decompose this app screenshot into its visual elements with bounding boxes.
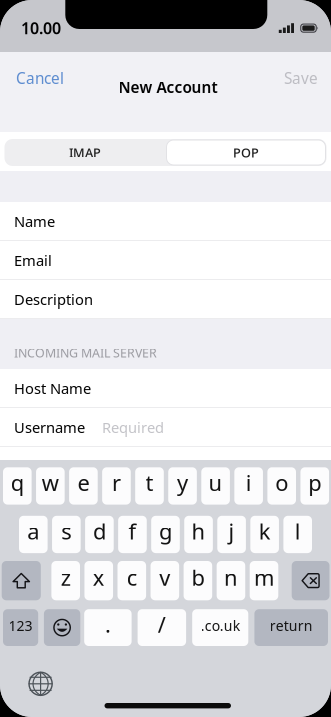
button[interactable]: m [250, 561, 278, 600]
staticText: z [61, 563, 71, 592]
staticText: f [128, 516, 136, 545]
staticText: l [295, 516, 301, 545]
button[interactable]: y [168, 467, 197, 505]
button[interactable]: u [201, 467, 230, 505]
button[interactable]: Emoji [44, 609, 80, 646]
staticText: c [127, 563, 137, 592]
button[interactable]: / [138, 609, 186, 646]
staticText: Cancel [16, 68, 64, 88]
staticText: x [93, 563, 105, 592]
button[interactable]: j [217, 516, 246, 553]
button[interactable]: Next keyboard [26, 669, 56, 699]
staticText: POP [233, 144, 259, 161]
button[interactable]: d [85, 516, 114, 553]
staticText: w [42, 468, 59, 497]
button[interactable]: IMAP [4, 139, 165, 166]
button[interactable]: l [283, 516, 312, 553]
staticText: . [105, 610, 111, 639]
button[interactable]: t [135, 467, 164, 505]
button[interactable]: o [267, 467, 296, 505]
button[interactable]: q [3, 467, 32, 505]
button[interactable]: i [234, 467, 263, 505]
staticText: .co.uk [201, 616, 240, 635]
button[interactable]: .co.uk [192, 609, 248, 646]
button[interactable]: h [184, 516, 213, 553]
staticText: return [270, 616, 313, 635]
staticText: Required [102, 417, 164, 437]
staticText: g [159, 516, 172, 545]
staticText: r [112, 468, 121, 497]
staticText: Save [284, 68, 318, 88]
staticText: New Account [118, 77, 217, 97]
button[interactable]: POP [165, 139, 326, 166]
staticText: k [259, 516, 271, 545]
staticText: i [246, 468, 252, 497]
staticText: Username [14, 417, 85, 437]
button[interactable]: s [52, 516, 81, 553]
button[interactable]: Delete [292, 561, 329, 600]
staticText: p [308, 468, 321, 497]
button[interactable]: e [69, 467, 98, 505]
staticText: Description [14, 289, 93, 309]
button[interactable]: n [217, 561, 245, 600]
button[interactable]: Shift [2, 561, 41, 600]
button[interactable]: 123 [3, 609, 38, 646]
button[interactable]: Save [278, 67, 324, 89]
button[interactable]: v [150, 561, 179, 600]
staticText: q [11, 468, 24, 497]
staticText: a [27, 516, 39, 545]
button[interactable]: k [250, 516, 279, 553]
button[interactable]: b [184, 561, 212, 600]
button[interactable]: g [151, 516, 180, 553]
staticText: o [275, 468, 288, 497]
staticText: b [191, 563, 204, 592]
staticText: n [224, 563, 238, 592]
staticText: e [77, 468, 89, 497]
button[interactable]: w [36, 467, 65, 505]
button[interactable]: Cancel [10, 67, 70, 89]
button[interactable]: z [51, 561, 80, 600]
button[interactable]: p [300, 467, 329, 505]
button[interactable]: x [84, 561, 113, 600]
staticText: d [93, 516, 106, 545]
staticText: h [192, 516, 206, 545]
staticText: IMAP [69, 144, 101, 161]
button[interactable]: c [117, 561, 146, 600]
staticText: s [61, 516, 71, 545]
staticText: INCOMING MAIL SERVER [14, 344, 157, 361]
staticText: m [254, 563, 274, 592]
staticText: u [209, 468, 223, 497]
staticText: 123 [9, 616, 33, 635]
staticText: t [145, 468, 153, 497]
staticText: y [177, 468, 188, 497]
button[interactable]: return [254, 609, 328, 646]
staticText: Host Name [14, 378, 91, 398]
staticText: Name [14, 211, 55, 231]
button[interactable]: f [118, 516, 147, 553]
button[interactable]: r [102, 467, 131, 505]
staticText: v [159, 563, 170, 592]
staticText: Email [14, 250, 52, 270]
button[interactable]: a [19, 516, 48, 553]
button[interactable]: . [84, 609, 132, 646]
staticText: 10.00 [21, 17, 61, 39]
staticText: j [229, 516, 235, 545]
staticText: / [158, 610, 166, 639]
